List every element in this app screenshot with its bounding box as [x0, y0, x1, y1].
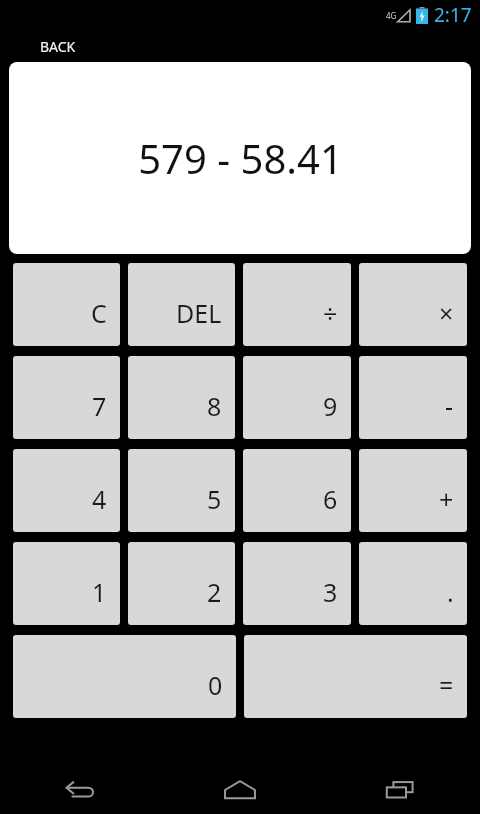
button[interactable]: 9: [243, 356, 351, 439]
staticText: BACK: [40, 37, 76, 56]
button[interactable]: BACK: [0, 30, 480, 62]
button[interactable]: 6: [243, 449, 351, 532]
button[interactable]: Recent apps: [320, 765, 480, 814]
button[interactable]: C: [13, 263, 120, 346]
staticText: 5: [207, 482, 222, 516]
button[interactable]: =: [244, 635, 467, 718]
staticText: 2: [207, 575, 222, 609]
staticText: ×: [439, 296, 454, 330]
button[interactable]: 4: [13, 449, 120, 532]
staticText: C: [91, 296, 107, 330]
button[interactable]: 1: [13, 542, 120, 625]
button[interactable]: 5: [128, 449, 235, 532]
staticText: 9: [323, 389, 338, 423]
staticText: 7: [92, 389, 107, 423]
button[interactable]: 2: [128, 542, 235, 625]
button[interactable]: ÷: [243, 263, 351, 346]
button[interactable]: .: [359, 542, 467, 625]
button[interactable]: Home: [160, 765, 320, 814]
staticText: -: [445, 389, 454, 423]
staticText: 4: [92, 482, 107, 516]
staticText: 579 - 58.41: [138, 131, 343, 185]
staticText: ÷: [323, 296, 338, 330]
button[interactable]: 8: [128, 356, 235, 439]
staticText: 1: [92, 575, 107, 609]
button[interactable]: 579 - 58.41: [9, 62, 471, 254]
button[interactable]: 7: [13, 356, 120, 439]
staticText: 2:17: [434, 2, 472, 28]
staticText: 3: [323, 575, 338, 609]
button[interactable]: ×: [359, 263, 467, 346]
button[interactable]: -: [359, 356, 467, 439]
staticText: 0: [208, 668, 223, 702]
staticText: DEL: [176, 296, 222, 330]
staticText: 8: [207, 389, 222, 423]
button[interactable]: 3: [243, 542, 351, 625]
button[interactable]: DEL: [128, 263, 235, 346]
staticText: 6: [323, 482, 338, 516]
staticText: .: [447, 575, 454, 609]
button[interactable]: Back: [0, 765, 160, 814]
staticText: =: [439, 668, 454, 702]
staticText: 4G: [386, 10, 397, 21]
button[interactable]: 0: [13, 635, 236, 718]
staticText: +: [439, 482, 454, 516]
button[interactable]: +: [359, 449, 467, 532]
